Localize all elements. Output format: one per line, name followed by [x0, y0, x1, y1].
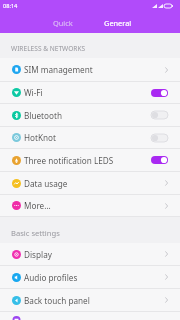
button[interactable]: Display — [0, 243, 180, 266]
button[interactable]: SIM management — [0, 58, 180, 82]
staticText: Quick — [53, 18, 73, 28]
staticText: Basic settings — [11, 228, 60, 238]
button[interactable]: Quick — [35, 13, 90, 33]
staticText: WIRELESS & NETWORKS — [11, 44, 86, 53]
staticText: Audio profiles — [24, 272, 165, 283]
button[interactable]: Bluetooth — [0, 104, 180, 127]
staticText: 08:14 — [3, 2, 18, 10]
button[interactable]: HotKnot — [0, 127, 180, 149]
staticText: Three notification LEDS — [24, 155, 151, 166]
staticText: Display — [24, 249, 165, 260]
staticText: Back touch panel — [24, 295, 165, 306]
staticText: Data usage — [24, 178, 165, 189]
staticText: More... — [24, 200, 165, 211]
staticText: Bluetooth — [24, 110, 151, 121]
button[interactable]: Storage — [0, 312, 180, 320]
staticText: Wi-Fi — [24, 87, 151, 98]
staticText: General — [104, 18, 132, 28]
button[interactable]: Back touch panel — [0, 289, 180, 312]
button[interactable]: Wi-Fi — [0, 82, 180, 104]
staticText: SIM management — [24, 64, 165, 75]
button[interactable]: Data usage — [0, 172, 180, 195]
button[interactable]: More... — [0, 195, 180, 217]
staticText: HotKnot — [24, 132, 151, 143]
button[interactable]: Three notification LEDS — [0, 149, 180, 172]
button[interactable]: General — [90, 13, 145, 33]
button[interactable]: Audio profiles — [0, 266, 180, 289]
